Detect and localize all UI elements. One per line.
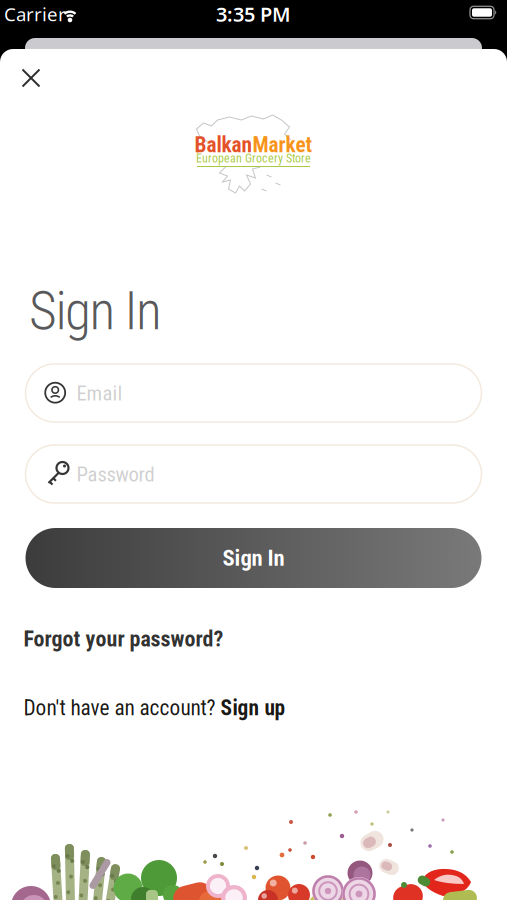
button[interactable]: Password: [25, 445, 481, 503]
staticText: Sign In: [222, 545, 284, 571]
staticText: European Grocery Store: [196, 151, 311, 166]
button[interactable]: Email: [25, 364, 481, 422]
button[interactable]: Close: [13, 60, 49, 96]
staticText: Password: [76, 462, 154, 487]
staticText: Sign In: [29, 280, 162, 342]
staticText: Email: [76, 381, 122, 406]
staticText: Market: [252, 132, 312, 157]
button[interactable]: Forgot your password?: [23, 626, 483, 652]
staticText: Forgot your password?: [23, 626, 223, 652]
staticText: 3:35 PM: [216, 1, 291, 27]
staticText: Balkan: [194, 132, 252, 157]
staticText: Don't have an account? Sign up: [23, 696, 285, 720]
staticText: Carrier: [4, 2, 66, 26]
button[interactable]: Don't have an account? Sign up: [23, 695, 483, 721]
button[interactable]: Sign In: [25, 528, 481, 588]
